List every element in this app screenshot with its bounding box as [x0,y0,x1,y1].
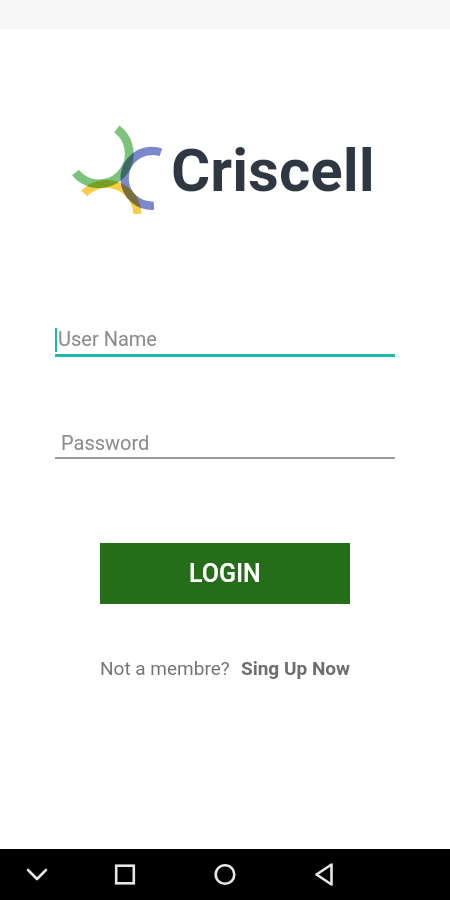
staticText: Not a membre? [100,657,230,679]
button[interactable]: Recent apps [100,849,150,900]
button[interactable]: Sing Up Now [241,657,351,679]
staticText: Sing Up Now [241,657,351,679]
staticText: User Name [58,327,157,350]
button[interactable]: Hide keyboard [12,849,62,900]
staticText: LOGIN [189,559,261,588]
staticText: Password [61,431,150,454]
button[interactable]: LOGIN [100,543,350,604]
staticText: Criscell [171,135,375,205]
button[interactable]: User Name [55,326,395,357]
button[interactable]: Back [300,849,350,900]
button[interactable]: Password [55,431,395,459]
button[interactable]: Home [200,849,250,900]
